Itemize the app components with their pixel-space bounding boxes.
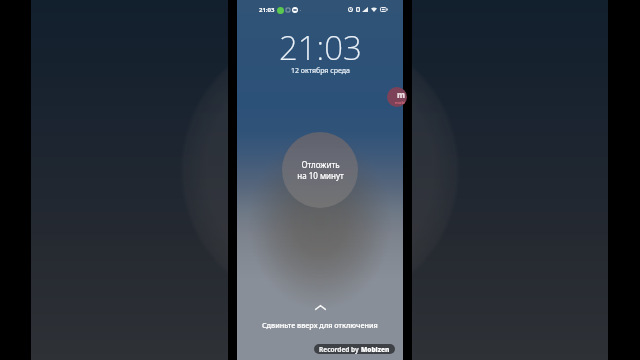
staticText: m [397,89,405,100]
staticText: 12 октября среда [291,66,350,76]
staticText: Recorded by [319,345,361,354]
staticText: mobi [395,100,406,105]
button[interactable]: Отложить на 10 минут [282,132,358,208]
button[interactable]: Swipe up to dismiss [262,305,378,330]
staticText: Сдвиньте вверх для отключения [262,320,378,330]
staticText: Mobizen [361,345,390,354]
staticText: 21:03 [279,25,362,70]
staticText: 21:03 [259,6,275,14]
staticText: Отложить на 10 минут [297,159,344,181]
